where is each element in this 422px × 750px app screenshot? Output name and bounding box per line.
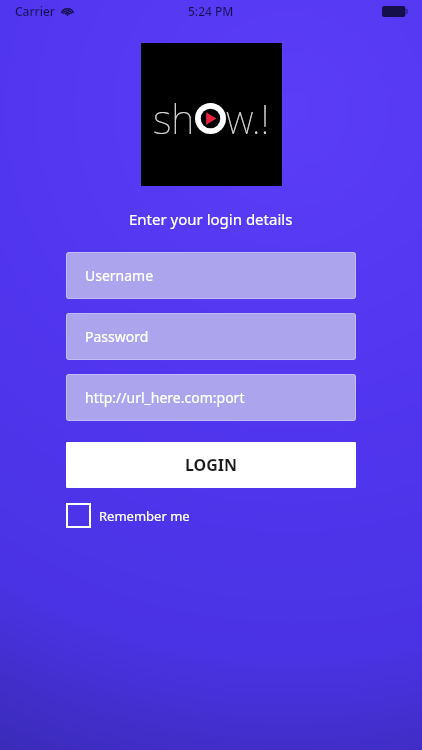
staticText: LOGIN	[185, 454, 238, 476]
staticText: Remember me	[99, 507, 190, 525]
staticText: Username	[85, 266, 154, 285]
staticText: Password	[85, 327, 149, 346]
staticText: sh	[153, 91, 195, 145]
button[interactable]: Remember me	[66, 503, 190, 528]
staticText: Enter your login details	[129, 209, 293, 229]
staticText: w.!	[226, 91, 270, 145]
button[interactable]: Username	[66, 252, 356, 299]
button[interactable]: LOGIN	[66, 442, 356, 488]
staticText: 5:24 PM	[188, 3, 234, 19]
button[interactable]: Password	[66, 313, 356, 360]
button[interactable]: http://url_here.com:port	[66, 374, 356, 421]
staticText: Carrier	[15, 3, 55, 19]
staticText: http://url_here.com:port	[85, 388, 245, 407]
